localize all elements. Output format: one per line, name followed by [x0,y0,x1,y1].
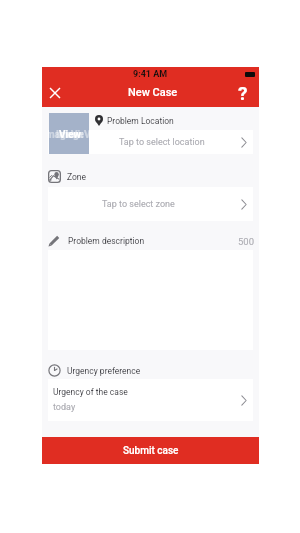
staticText: Problem description [68,236,145,246]
staticText: 500 [238,236,255,247]
staticText: Tap to select location [119,137,205,148]
staticText: today [53,402,76,413]
staticText: Problem Location [107,116,174,126]
button[interactable]: Close [43,81,67,105]
staticText: Urgency of the case [53,387,128,397]
staticText: Zone [67,172,87,182]
staticText: Urgency preference [67,366,141,376]
staticText: Submit case [123,445,179,457]
button[interactable]: Submit case [42,437,259,464]
button[interactable]: Help [232,82,254,104]
other: Open [241,395,247,406]
other: Open [241,137,247,148]
staticText: New Case [128,86,178,99]
staticText: ImageView [49,129,83,141]
button[interactable]: Tap to select zone [48,187,253,221]
staticText: ImageView [56,129,89,141]
staticText: 9:41 AM [133,69,168,80]
button[interactable]: Urgency of the case [48,379,253,421]
other: Open [241,199,247,210]
staticText: ? [238,82,248,104]
staticText: Tap to select zone [102,199,175,210]
staticText: View [59,129,81,141]
button[interactable]: Tap to select location [48,130,253,154]
